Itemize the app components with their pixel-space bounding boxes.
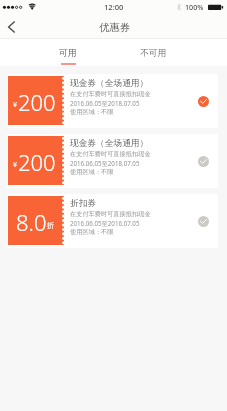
staticText: 使用区域：不限 <box>70 228 114 236</box>
button[interactable]: Select <box>198 156 209 167</box>
staticText: 12:00 <box>104 2 124 12</box>
staticText: ¥ <box>13 100 18 110</box>
staticText: 可用 <box>59 48 77 59</box>
button[interactable]: 8.0 <box>7 194 218 248</box>
staticText: 使用区域：不限 <box>70 168 114 176</box>
staticText: 2016.06.05至2018.07.05 <box>70 99 140 107</box>
staticText: 8.0 <box>16 207 47 237</box>
staticText: 折扣券 <box>70 198 97 209</box>
staticText: 折 <box>47 221 54 230</box>
button[interactable]: Selected <box>198 96 209 107</box>
staticText: 在支付车费时可直接抵扣现金 <box>70 210 151 218</box>
button[interactable]: Back <box>0 14 28 39</box>
staticText: 在支付车费时可直接抵扣现金 <box>70 150 151 158</box>
staticText: 100% <box>185 2 204 12</box>
button[interactable]: Select <box>198 216 209 227</box>
staticText: 使用区域：不限 <box>70 108 114 116</box>
button[interactable]: ¥ <box>7 74 218 128</box>
staticText: 在支付车费时可直接抵扣现金 <box>70 90 151 98</box>
staticText: 200 <box>18 87 56 117</box>
staticText: 200 <box>18 147 56 177</box>
button[interactable]: ¥ <box>7 134 218 188</box>
staticText: 现金券（全场通用） <box>70 78 149 89</box>
staticText: ¥ <box>13 160 18 170</box>
button[interactable]: 可用 <box>49 39 86 66</box>
staticText: 不可用 <box>140 48 167 59</box>
staticText: 现金券（全场通用） <box>70 138 149 149</box>
staticText: 2016.06.05至2016.07.05 <box>70 219 140 227</box>
staticText: 2016.06.05至2018.07.05 <box>70 159 140 167</box>
button[interactable]: 不可用 <box>135 39 172 66</box>
staticText: 优惠券 <box>99 21 130 34</box>
